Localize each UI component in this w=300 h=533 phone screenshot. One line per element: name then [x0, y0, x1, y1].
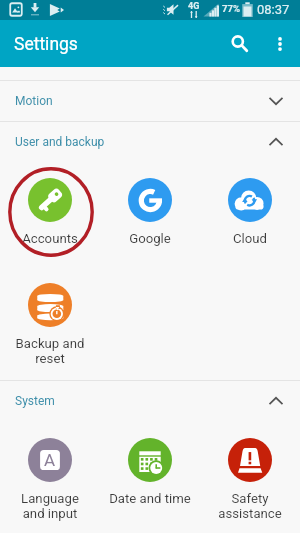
staticText: Motion — [15, 94, 53, 108]
staticText: Backup and reset — [0, 336, 100, 366]
button[interactable]: Accounts — [0, 170, 100, 252]
staticText: 4G — [188, 1, 200, 12]
staticText: Date and time — [100, 491, 200, 506]
button[interactable]: Backup and reset — [0, 275, 100, 357]
button[interactable]: Motion — [0, 81, 300, 121]
staticText: Safety assistance — [200, 491, 300, 521]
staticText: 08:37 — [257, 2, 290, 17]
button[interactable]: A — [0, 430, 100, 512]
staticText: Settings — [14, 34, 78, 55]
staticText: Google — [100, 231, 200, 246]
button[interactable]: More options — [262, 20, 298, 67]
button[interactable]: Safety assistance — [200, 430, 300, 512]
staticText: Language and input — [0, 491, 100, 521]
staticText: A — [44, 450, 56, 470]
staticText: User and backup — [15, 135, 105, 149]
button[interactable]: Date and time — [100, 430, 200, 512]
button[interactable]: Google — [100, 170, 200, 252]
staticText: Cloud — [200, 231, 300, 246]
staticText: Accounts — [0, 231, 100, 246]
staticText: System — [15, 394, 55, 408]
button[interactable]: System — [0, 381, 300, 421]
button[interactable]: Cloud — [200, 170, 300, 252]
button[interactable]: User and backup — [0, 122, 300, 162]
button[interactable]: Search — [220, 20, 258, 67]
staticText: 77% — [222, 3, 240, 14]
